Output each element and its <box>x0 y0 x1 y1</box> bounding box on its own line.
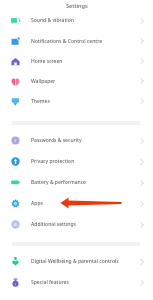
button[interactable]: Battery & performance <box>0 172 153 193</box>
staticText: Additional settings <box>31 221 139 228</box>
button[interactable]: Privacy protection <box>0 151 153 172</box>
staticText: Privacy protection <box>31 158 139 165</box>
button[interactable]: Special features <box>0 272 153 293</box>
button[interactable]: Sound & vibration <box>0 10 153 31</box>
staticText: Battery & performance <box>31 179 139 186</box>
staticText: Apps <box>31 200 139 207</box>
button[interactable]: Home screen <box>0 51 153 71</box>
staticText: Home screen <box>31 58 139 65</box>
button[interactable]: Passwords & security <box>0 130 153 151</box>
staticText: Wallpaper <box>31 78 139 85</box>
staticText: Digital Wellbeing & parental controls <box>31 258 139 265</box>
button[interactable]: Additional settings <box>0 214 153 235</box>
button[interactable]: Apps <box>0 193 153 214</box>
button[interactable]: Notifications & Control centre <box>0 31 153 51</box>
staticText: Passwords & security <box>31 137 139 144</box>
staticText: Settings <box>66 2 88 10</box>
button[interactable]: Wallpaper <box>0 71 153 91</box>
staticText: Themes <box>31 98 139 105</box>
button[interactable]: Digital Wellbeing & parental controls <box>0 251 153 272</box>
staticText: Notifications & Control centre <box>31 38 139 45</box>
button[interactable]: Themes <box>0 91 153 111</box>
staticText: Sound & vibration <box>31 17 139 24</box>
staticText: Special features <box>31 279 139 286</box>
